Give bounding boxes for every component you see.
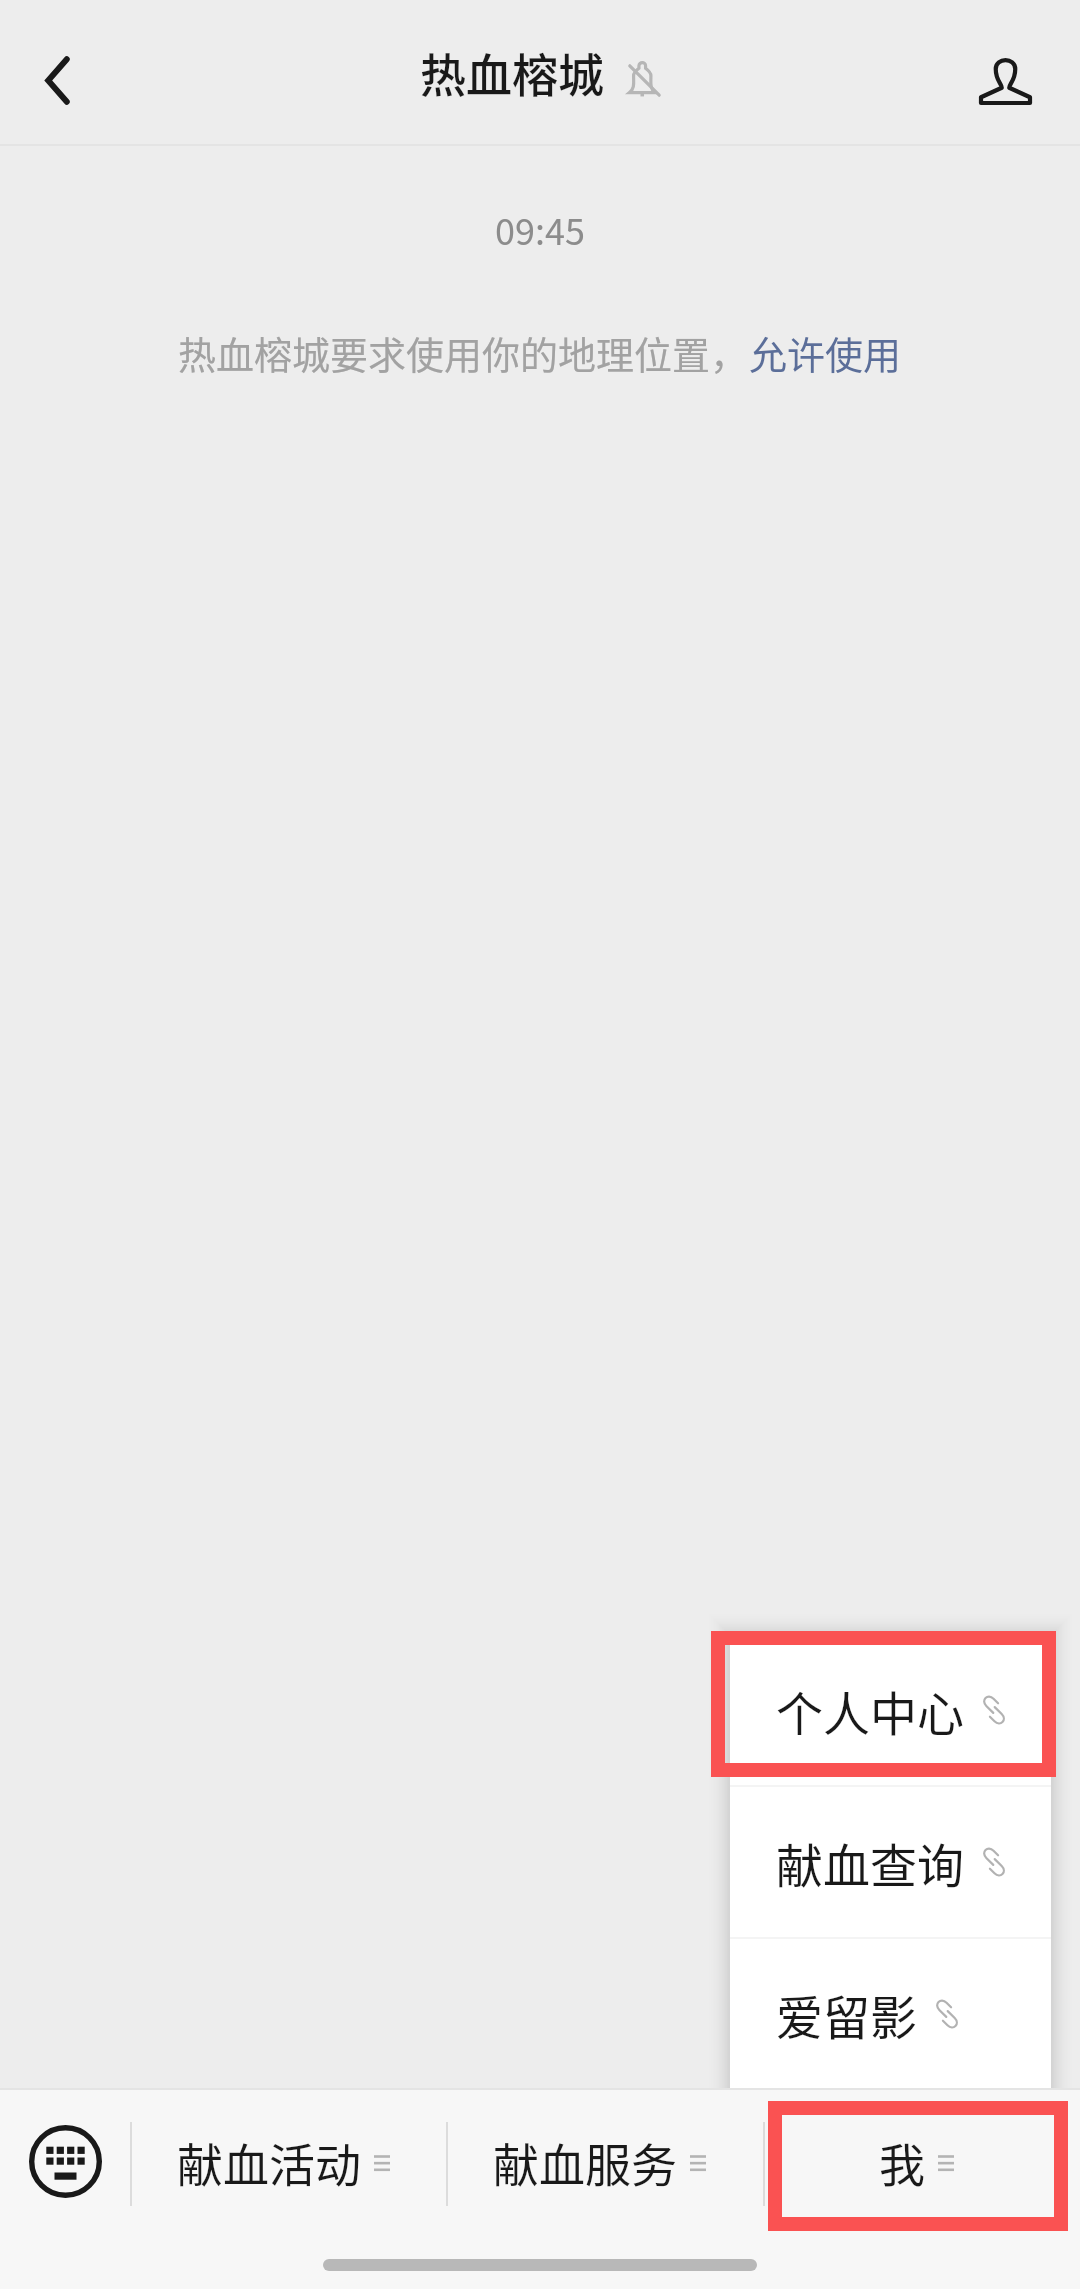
staticText: 个人中心	[776, 1676, 964, 1744]
button[interactable]: 爱留影	[730, 1939, 1051, 2088]
button[interactable]: 我	[763, 2088, 1080, 2240]
staticText: 09:45	[495, 203, 585, 255]
staticText: 热血榕城	[420, 39, 604, 106]
staticText: 献血查询	[776, 1828, 964, 1896]
staticText: 献血服务	[493, 2129, 677, 2196]
staticText: 我	[879, 2129, 925, 2196]
button[interactable]: Switch to keyboard	[0, 2088, 130, 2240]
button[interactable]: 个人中心	[730, 1635, 1051, 1785]
button[interactable]: Contact profile	[947, 0, 1080, 146]
button[interactable]: Back	[0, 0, 118, 146]
button[interactable]: 献血活动	[130, 2088, 446, 2240]
button[interactable]: 献血服务	[446, 2088, 763, 2240]
staticText: 爱留影	[776, 1980, 917, 2048]
button[interactable]: 允许使用	[749, 325, 902, 380]
button[interactable]: 献血查询	[730, 1787, 1051, 1937]
staticText: 热血榕城要求使用你的地理位置，	[178, 325, 749, 380]
staticText: 献血活动	[177, 2129, 361, 2196]
